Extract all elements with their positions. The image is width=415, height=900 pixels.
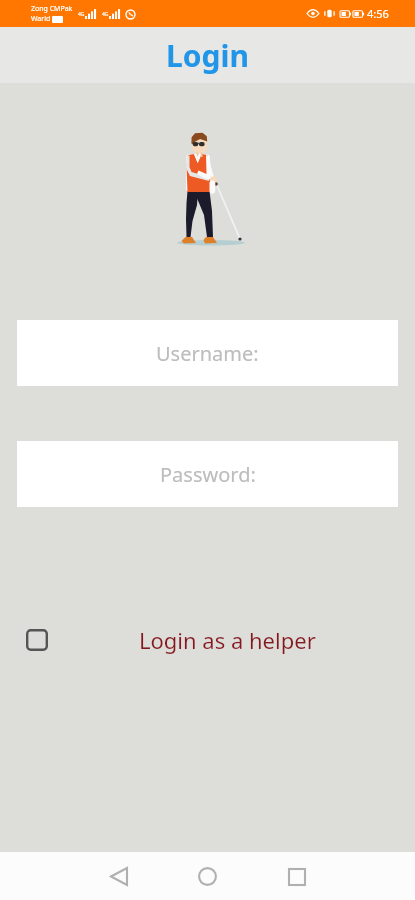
button[interactable]: Login as a helper [0, 623, 415, 657]
button[interactable]: Home [184, 853, 231, 900]
staticText: Zong CMPak [31, 4, 73, 14]
staticText: Login [166, 35, 249, 76]
staticText: Login as a helper [139, 625, 316, 655]
button[interactable]: Password: [17, 441, 398, 507]
staticText: 4G [102, 11, 109, 18]
button[interactable]: Username: [17, 320, 398, 386]
staticText: Warid [31, 14, 51, 24]
staticText: 4G [78, 11, 85, 18]
button[interactable]: Back [95, 853, 142, 900]
staticText: 4:56 [367, 6, 389, 21]
staticText: Username: [156, 340, 259, 367]
button[interactable]: Recent apps [273, 853, 320, 900]
staticText: Password: [160, 461, 256, 488]
